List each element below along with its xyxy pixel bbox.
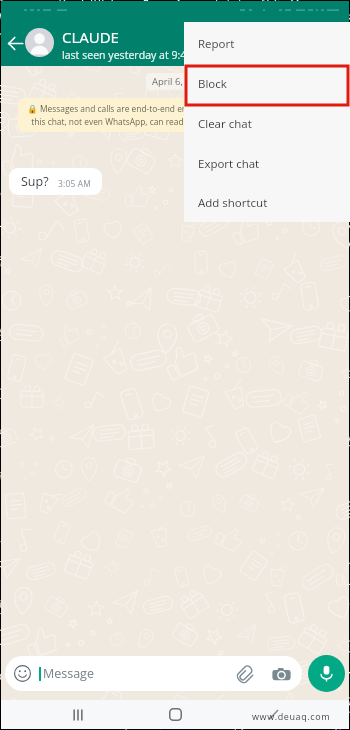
button[interactable]: Message: [5, 656, 302, 691]
button[interactable]: Back: [2, 30, 29, 57]
staticText: Export chat: [198, 156, 260, 172]
staticText: Add shortcut: [198, 195, 268, 211]
staticText: Report: [198, 36, 235, 52]
button[interactable]: Attach file: [233, 662, 257, 686]
button[interactable]: Back: [259, 700, 288, 729]
staticText: last seen yesterday at 9:41 PM: [62, 48, 212, 62]
button[interactable]: Record voice message: [308, 655, 345, 692]
staticText: Sup?: [21, 173, 49, 190]
button[interactable]: Camera: [269, 662, 293, 686]
button[interactable]: Recent apps: [63, 700, 92, 729]
button[interactable]: Home: [161, 700, 190, 729]
button[interactable]: Export chat: [184, 144, 350, 184]
staticText: 3:05 AM: [58, 178, 92, 189]
staticText: www.deuaq.com: [252, 710, 331, 722]
staticText: Message: [43, 665, 233, 682]
staticText: April 6, 2021: [152, 75, 208, 88]
button[interactable]: Report: [184, 24, 350, 64]
button[interactable]: Clear chat: [184, 104, 350, 144]
staticText: Clear chat: [198, 116, 252, 132]
button[interactable]: Add shortcut: [184, 184, 350, 222]
staticText: 🔒 Messages and calls are end-to-end encr…: [27, 103, 257, 127]
button[interactable]: Block: [184, 64, 350, 104]
staticText: CLAUDE: [62, 27, 119, 47]
staticText: Block: [198, 76, 227, 92]
